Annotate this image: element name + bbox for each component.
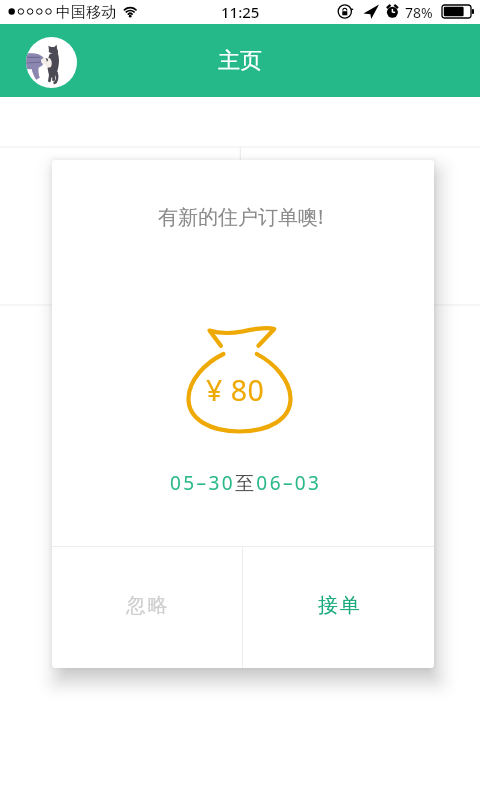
staticText: 主页 [218,47,262,75]
staticText: 78% [405,3,433,22]
staticText: 中国移动 [56,3,116,22]
staticText: 05–30至06–03 [170,470,322,496]
button[interactable]: 接单 [243,547,434,668]
staticText: 接单 [318,593,362,618]
staticText: ¥ 80 [206,371,265,410]
button[interactable]: 忽略 [52,547,242,668]
staticText: 忽略 [126,593,170,618]
button[interactable]: Profile [26,37,77,88]
staticText: 有新的住户订单噢! [158,203,324,230]
staticText: 11:25 [221,2,260,22]
